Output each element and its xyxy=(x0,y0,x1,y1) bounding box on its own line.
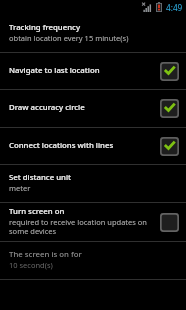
staticText: Connect locations with lines xyxy=(9,140,114,151)
button[interactable]: Set distance unit xyxy=(0,165,186,202)
staticText: Draw accuracy circle xyxy=(9,102,85,113)
button[interactable]: Unchecked xyxy=(160,213,179,232)
button[interactable]: Navigate to last location xyxy=(0,53,186,89)
staticText: obtain location every 15 minute(s) xyxy=(9,33,129,43)
staticText: Turn screen on xyxy=(9,206,65,217)
button[interactable]: Checked xyxy=(160,99,179,118)
button[interactable]: Draw accuracy circle xyxy=(0,90,186,127)
button[interactable]: Checked xyxy=(160,137,179,156)
staticText: Navigate to last location xyxy=(9,65,100,76)
staticText: 10 second(s) xyxy=(9,260,53,270)
button[interactable]: Connect locations with lines xyxy=(0,128,186,164)
staticText: meter xyxy=(9,183,31,193)
button[interactable]: Turn screen on xyxy=(0,203,186,241)
staticText: required to receive location updates on … xyxy=(9,217,155,236)
staticText: The screen is on for xyxy=(9,249,82,260)
staticText: Set distance unit xyxy=(9,172,72,183)
button[interactable]: Tracking frequency xyxy=(0,14,186,52)
button[interactable]: Checked xyxy=(160,62,179,81)
staticText: 4:49 xyxy=(166,2,183,13)
staticText: Tracking frequency xyxy=(9,22,81,33)
button[interactable]: The screen is on for xyxy=(0,242,186,279)
